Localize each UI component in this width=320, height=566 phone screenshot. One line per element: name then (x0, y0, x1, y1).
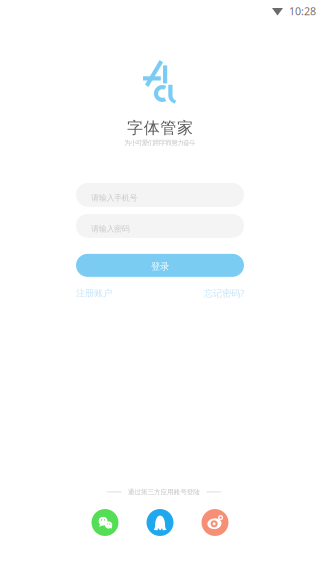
staticText: 请输入密码 (91, 224, 130, 234)
button[interactable]: 微信登录 (91, 509, 118, 536)
button[interactable]: QQ登录 (146, 509, 173, 536)
staticText: 字体管家 (127, 118, 193, 138)
staticText: 请输入手机号 (91, 193, 137, 203)
staticText: 为小可爱们用字而努力奋斗 (124, 139, 196, 147)
button[interactable]: 请输入手机号 (76, 183, 244, 207)
staticText: 忘记密码? (204, 287, 244, 299)
button[interactable]: 注册账户 (76, 287, 112, 299)
staticText: 注册账户 (76, 287, 112, 299)
staticText: 登录 (151, 261, 169, 272)
button[interactable]: 微博登录 (201, 509, 228, 536)
staticText: 10:28 (289, 4, 316, 18)
button[interactable]: 请输入密码 (76, 214, 244, 238)
button[interactable]: 登录 (76, 254, 244, 277)
button[interactable]: 忘记密码? (204, 287, 244, 299)
staticText: 通过第三方应用账号登陆 (128, 488, 200, 496)
